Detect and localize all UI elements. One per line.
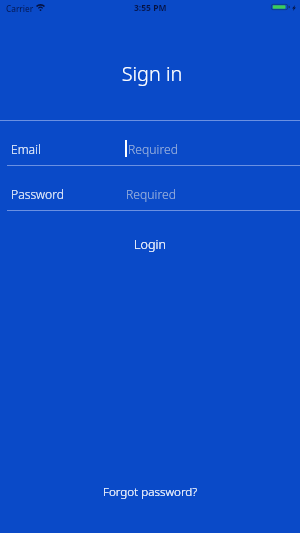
button[interactable]: Password [0,166,300,210]
staticText: Login [134,236,166,253]
staticText: Email [11,141,41,158]
staticText: Password [11,186,65,203]
button[interactable]: Forgot password? [0,476,300,506]
button[interactable]: Login [0,222,300,267]
staticText: Carrier [6,3,34,14]
button[interactable]: Email [0,121,300,165]
staticText: Required [126,186,176,203]
staticText: 3:55 PM [134,2,167,14]
staticText: Required [128,141,178,158]
staticText: Sign in [2,60,300,87]
other: Battery charging [271,4,290,10]
staticText: Forgot password? [103,483,198,499]
other: Wi-Fi [37,4,44,11]
